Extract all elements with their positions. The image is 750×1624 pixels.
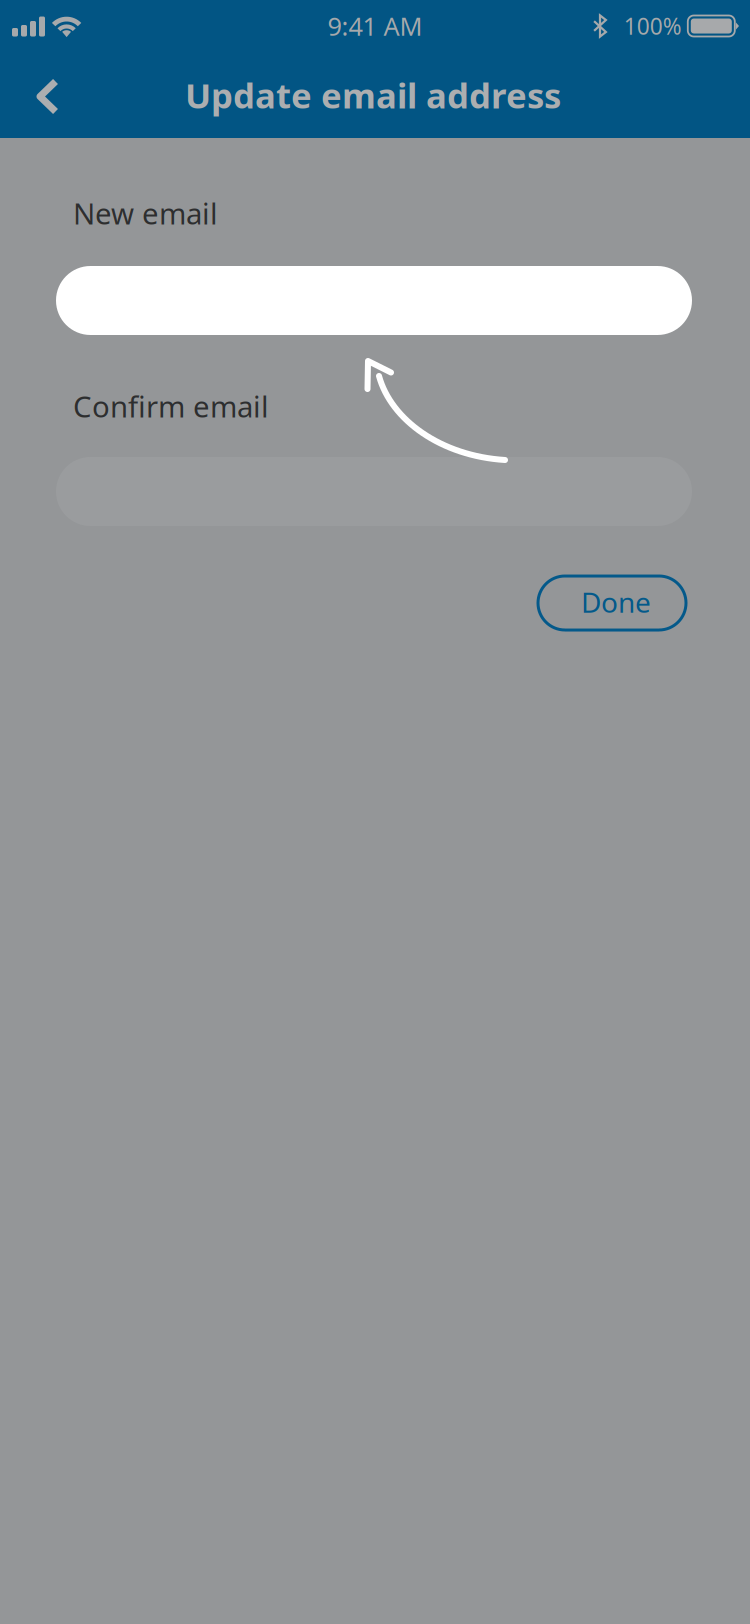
staticText: Done — [581, 583, 651, 621]
staticText: New email — [73, 193, 218, 232]
staticText: Confirm email — [73, 386, 269, 425]
staticText: Update email address — [185, 72, 561, 118]
staticText: 100% — [624, 11, 682, 41]
button[interactable]: New email — [56, 266, 692, 335]
button[interactable]: Back — [14, 49, 78, 137]
button[interactable]: Done — [538, 576, 686, 630]
button[interactable]: Confirm email — [56, 457, 692, 526]
staticText: 9:41 AM — [327, 9, 422, 43]
